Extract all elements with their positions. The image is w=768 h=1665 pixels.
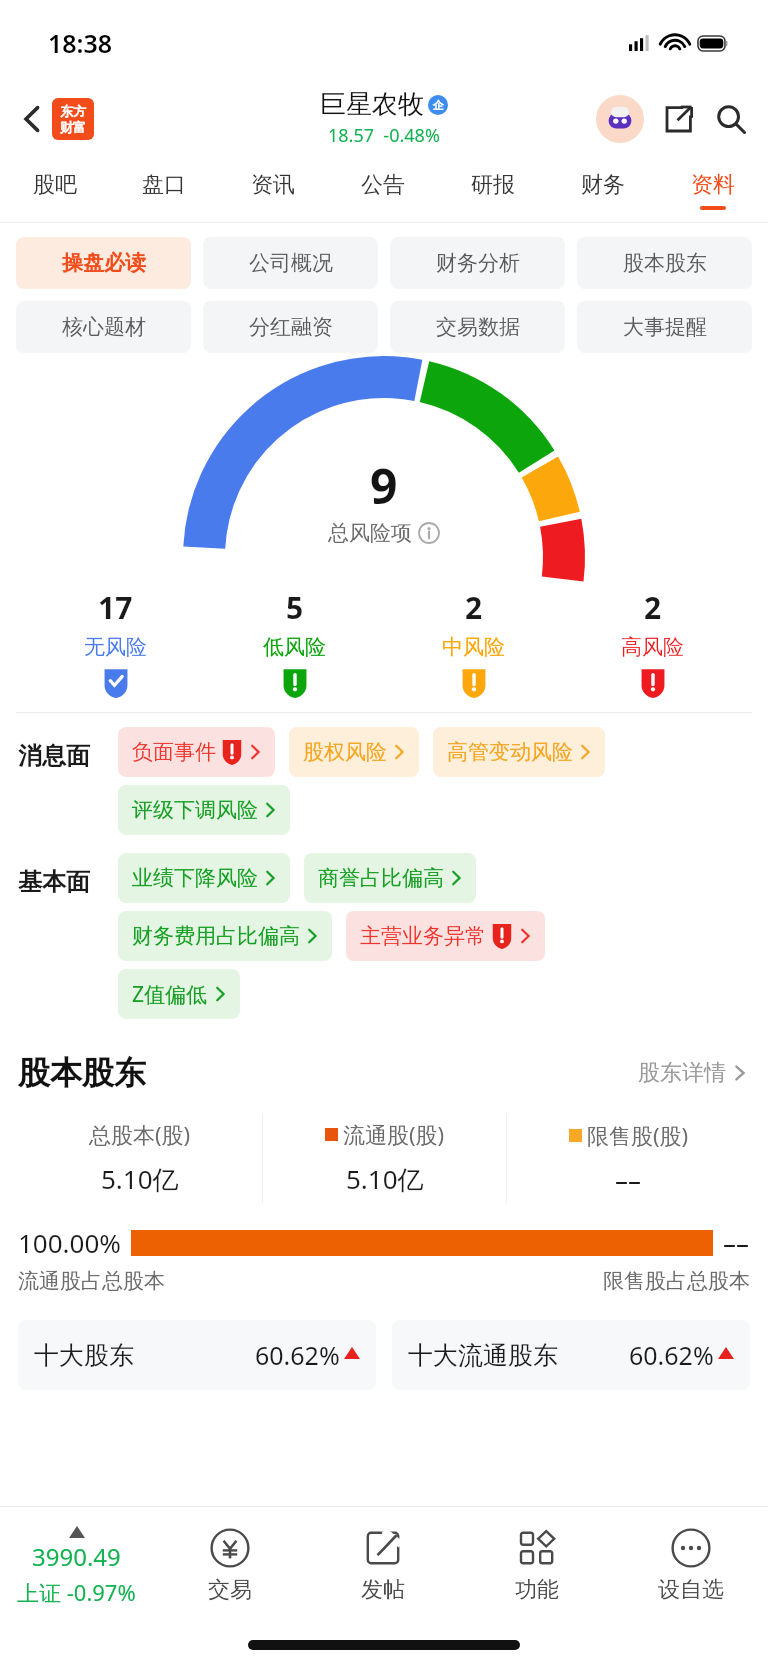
staticText: 十大流通股东 [408,1340,558,1371]
staticText: 股东详情 [638,1059,726,1087]
staticText: 发帖 [361,1576,405,1604]
button[interactable]: Search [710,98,752,140]
staticText: 17 [98,587,133,628]
staticText: Z值偏低 [132,980,208,1009]
staticText: 大事提醒 [623,314,707,340]
button[interactable]: 大事提醒 [577,301,752,353]
staticText: 5 [286,587,304,628]
staticText: 基本面 [18,867,90,897]
button[interactable]: 财务分析 [390,237,565,289]
button[interactable]: 财务 [548,158,658,222]
button[interactable]: 负面事件 [118,727,275,777]
staticText: 9 [370,453,398,518]
button[interactable]: 操盘必读 [16,237,191,289]
staticText: 公告 [361,171,405,199]
button[interactable]: 设自选 [614,1522,768,1610]
staticText: –– [723,1225,750,1260]
staticText: 消息面 [18,741,90,771]
staticText: 东方 [60,103,86,119]
staticText: 无风险 [84,634,147,660]
button[interactable]: Share [658,98,700,140]
button[interactable]: 核心题材 [16,301,191,353]
staticText: 5.10亿 [346,1161,424,1197]
staticText: 功能 [515,1576,559,1604]
staticText: –– [615,1162,642,1197]
button[interactable]: 交易 [153,1522,306,1610]
button[interactable]: 股东详情 [634,1055,750,1091]
staticText: 核心题材 [62,314,146,340]
staticText: 股权风险 [303,739,387,765]
button[interactable]: 高管变动风险 [433,727,605,777]
button[interactable]: 股吧 [0,158,109,222]
staticText: 限售股占总股本 [603,1268,750,1294]
button[interactable]: 股权风险 [289,727,419,777]
button[interactable]: 3990.49 [0,1520,153,1613]
button[interactable]: 盘口 [109,158,218,222]
button[interactable]: Risk info [328,520,440,546]
staticText: 高风险 [621,634,684,660]
staticText: 100.00% [18,1225,121,1260]
button[interactable]: 2 [384,587,563,698]
staticText: 交易数据 [436,314,520,340]
staticText: 低风险 [263,634,326,660]
staticText: 研报 [471,171,515,199]
staticText: 股本股东 [623,250,707,276]
button[interactable]: 资讯 [218,158,328,222]
button[interactable]: 十大股东 [18,1320,376,1390]
staticText: 60.62% [255,1338,340,1372]
staticText: 负面事件 [132,739,216,765]
staticText: 5.10亿 [101,1161,179,1197]
staticText: 流通股(股) [343,1119,445,1149]
staticText: 中风险 [442,634,505,660]
button[interactable]: 公告 [328,158,438,222]
staticText: 3990.49 [32,1540,121,1573]
button[interactable]: 研报 [438,158,548,222]
staticText: 财富 [60,119,86,135]
staticText: 上证 -0.97% [17,1577,136,1607]
staticText: 公司概况 [249,250,333,276]
staticText: 设自选 [658,1576,724,1604]
button[interactable]: 商誉占比偏高 [304,853,476,903]
button[interactable]: 评级下调风险 [118,785,290,835]
staticText: 高管变动风险 [447,739,573,765]
button[interactable]: 公司概况 [203,237,378,289]
staticText: 操盘必读 [62,250,146,276]
staticText: 2 [465,587,483,628]
button[interactable]: 资料 [658,158,768,222]
staticText: 业绩下降风险 [132,865,258,891]
button[interactable]: 5 [205,587,384,698]
staticText: 资料 [691,171,735,199]
button[interactable]: 业绩下降风险 [118,853,290,903]
button[interactable]: Z值偏低 [118,969,240,1019]
staticText: 商誉占比偏高 [318,865,444,891]
button[interactable]: 股本股东 [577,237,752,289]
staticText: 财务费用占比偏高 [132,923,300,949]
staticText: 财务 [581,171,625,199]
button[interactable]: 功能 [460,1522,614,1610]
button[interactable]: 十大流通股东 [392,1320,750,1390]
button[interactable]: 主营业务异常 [346,911,545,961]
staticText: 股吧 [33,171,77,199]
staticText: 巨星农牧 [320,88,424,121]
button[interactable]: 财务费用占比偏高 [118,911,332,961]
button[interactable]: 17 [26,587,205,698]
staticText: 流通股占总股本 [18,1268,165,1294]
button[interactable]: 交易数据 [390,301,565,353]
staticText: 评级下调风险 [132,797,258,823]
staticText: 18.57 -0.48% [328,123,440,148]
button[interactable]: 分红融资 [203,301,378,353]
button[interactable]: 发帖 [306,1522,460,1610]
staticText: 财务分析 [436,250,520,276]
button[interactable]: Back [14,92,102,146]
staticText: 总风险项 [328,520,412,546]
staticText: 企 [433,98,444,112]
button[interactable]: 2 [563,587,742,698]
staticText: 限售股(股) [587,1120,689,1150]
staticText: 股本股东 [18,1053,146,1093]
button[interactable]: AI assistant [596,95,644,143]
staticText: 18:38 [48,26,113,60]
staticText: 主营业务异常 [360,923,486,949]
staticText: 总股本(股) [89,1119,191,1149]
staticText: 2 [644,587,662,628]
staticText: 盘口 [142,171,186,199]
